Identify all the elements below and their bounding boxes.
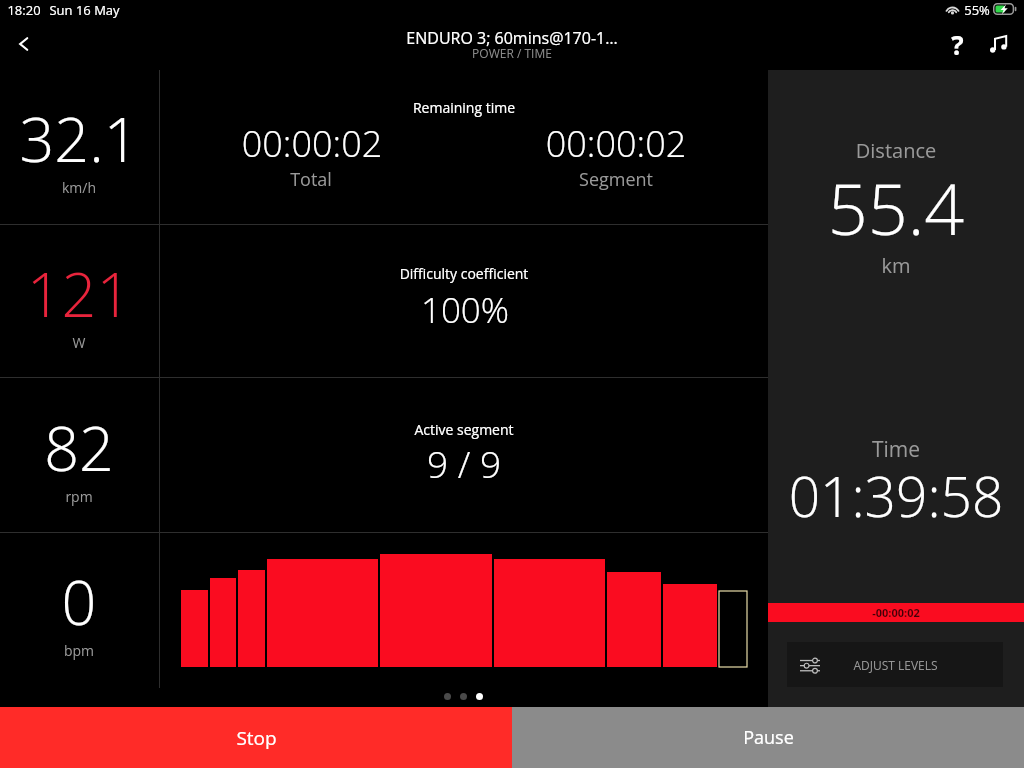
staticText: rpm xyxy=(0,487,179,506)
staticText: 55% xyxy=(964,1,990,19)
button[interactable]: Stop xyxy=(0,707,512,768)
staticText: km xyxy=(768,252,1024,279)
staticText: 55.4 xyxy=(768,160,1024,255)
staticText: Total xyxy=(211,167,411,192)
staticText: Difficulty coefficient xyxy=(264,264,664,283)
button[interactable]: Help xyxy=(934,21,980,67)
staticText: 32.1 xyxy=(0,97,179,180)
button[interactable]: Pause xyxy=(512,707,1024,768)
staticText: Distance xyxy=(768,137,1024,164)
staticText: ? xyxy=(951,27,964,62)
staticText: 121 xyxy=(0,252,179,335)
button[interactable] xyxy=(160,225,768,377)
button[interactable]: ADJUST LEVELS xyxy=(787,642,1003,687)
button[interactable] xyxy=(0,378,159,532)
button[interactable]: Workout profile chart xyxy=(160,533,768,688)
staticText: Pause xyxy=(743,725,794,750)
staticText: Stop xyxy=(236,725,277,751)
staticText: Time xyxy=(768,435,1024,464)
staticText: 0 xyxy=(0,560,179,643)
staticText: W xyxy=(0,333,179,352)
staticText: Remaining time xyxy=(314,98,614,117)
button[interactable] xyxy=(0,70,159,224)
staticText: Active segment xyxy=(314,420,614,439)
button[interactable] xyxy=(0,225,159,379)
staticText: 18:20 xyxy=(7,1,41,19)
button[interactable] xyxy=(160,378,768,532)
other: Wi-Fi xyxy=(945,4,960,15)
button[interactable] xyxy=(160,70,768,224)
staticText: 100% xyxy=(315,286,615,334)
staticText: bpm xyxy=(0,641,179,660)
button[interactable]: Music xyxy=(976,21,1022,67)
button[interactable] xyxy=(0,533,159,687)
staticText: 00:00:02 xyxy=(466,119,766,168)
staticText: 82 xyxy=(0,406,179,489)
staticText: 9 / 9 xyxy=(314,438,614,488)
staticText: 00:00:02 xyxy=(162,119,462,168)
staticText: POWER / TIME xyxy=(362,45,662,61)
staticText: -00:00:02 xyxy=(872,605,920,620)
button[interactable]: Back xyxy=(0,21,46,67)
other: Battery 55 percent charging xyxy=(993,3,1017,15)
staticText: Segment xyxy=(516,167,716,192)
staticText: 01:39:58 xyxy=(768,458,1024,533)
staticText: km/h xyxy=(0,178,179,197)
staticText: ENDURO 3; 60mins@170-1… xyxy=(262,27,762,49)
staticText: Sun 16 May xyxy=(49,1,120,19)
staticText: ADJUST LEVELS xyxy=(853,657,938,673)
